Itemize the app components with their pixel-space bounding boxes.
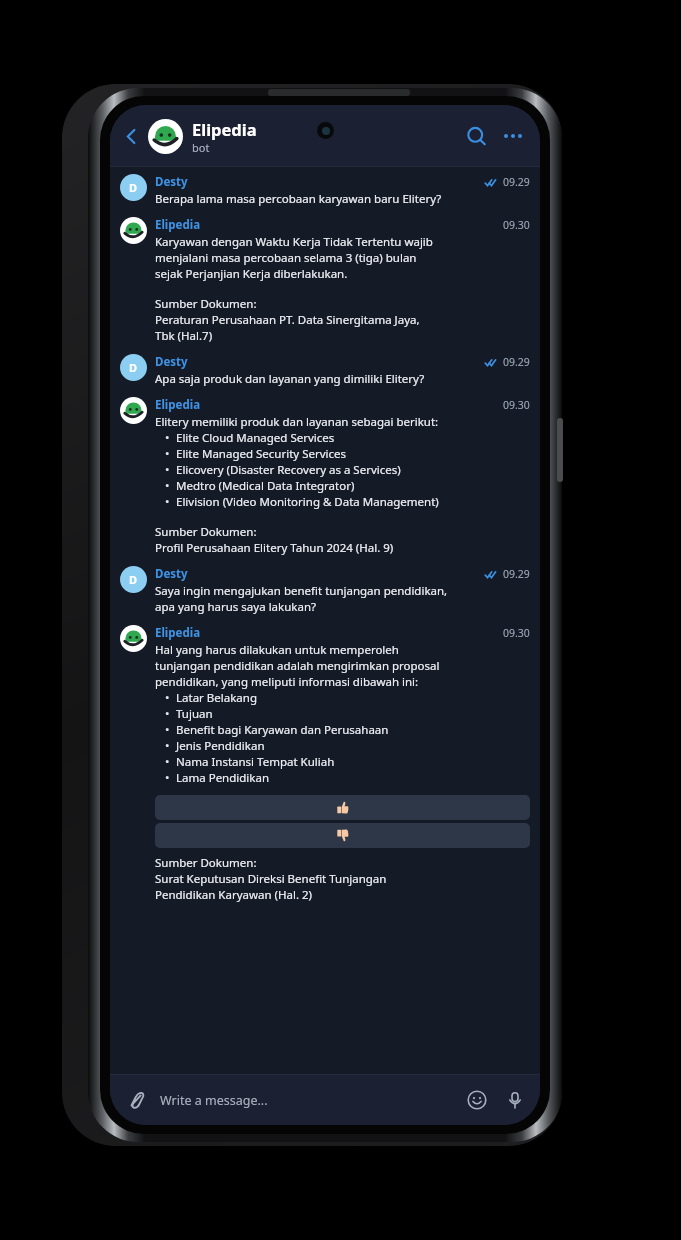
staticText: Peraturan Perusahaan PT. Data Sinergitam… — [155, 312, 420, 328]
staticText: Elite Managed Security Services — [176, 446, 347, 462]
staticText: • — [165, 722, 170, 738]
staticText: Surat Keputusan Direksi Benefit Tunjanga… — [155, 871, 387, 887]
button[interactable]: D — [110, 561, 540, 620]
button[interactable]: D — [110, 349, 540, 392]
staticText: Tujuan — [176, 706, 213, 722]
staticText: pendidikan, yang meliputi informasi diba… — [155, 674, 419, 690]
staticText: • — [165, 478, 170, 494]
staticText: Elipedia — [192, 118, 257, 140]
staticText: Berapa lama masa percobaan karyawan baru… — [155, 191, 442, 207]
staticText: Hal yang harus dilakukan untuk memperole… — [155, 642, 399, 658]
staticText: sejak Perjanjian Kerja diberlakukan. — [155, 266, 348, 282]
staticText: Apa saja produk dan layanan yang dimilik… — [155, 371, 425, 387]
button[interactable]: More options — [498, 121, 528, 151]
staticText: • — [165, 770, 170, 786]
staticText: • — [165, 430, 170, 446]
staticText: Write a message... — [160, 1092, 268, 1109]
staticText: tunjangan pendidikan adalah mengirimkan … — [155, 658, 440, 674]
staticText: • — [165, 738, 170, 754]
staticText: Pendidikan Karyawan (Hal. 2) — [155, 887, 313, 903]
staticText: 09.29 — [503, 355, 530, 369]
staticText: Jenis Pendidikan — [176, 738, 265, 754]
button[interactable]: Elipedia — [110, 392, 540, 561]
staticText: bot — [192, 140, 210, 155]
staticText: Nama Instansi Tempat Kuliah — [176, 754, 335, 770]
staticText: Desty — [155, 566, 188, 582]
staticText: 09.30 — [503, 626, 530, 640]
button[interactable]: Back — [116, 121, 146, 151]
button[interactable]: Elipedia — [110, 620, 540, 908]
staticText: Elipedia — [155, 397, 201, 413]
staticText: 09.29 — [503, 175, 530, 189]
button[interactable]: D — [110, 169, 540, 212]
staticText: 09.29 — [503, 567, 530, 581]
staticText: D — [129, 180, 138, 195]
button[interactable]: Elipedia — [148, 118, 460, 155]
staticText: D — [129, 572, 138, 587]
staticText: Elite Cloud Managed Services — [176, 430, 335, 446]
staticText: Benefit bagi Karyawan dan Perusahaan — [176, 722, 389, 738]
staticText: Elicovery (Disaster Recovery as a Servic… — [176, 462, 401, 478]
button[interactable]: Search — [460, 120, 492, 152]
staticText: Sumber Dokumen: — [155, 855, 257, 871]
staticText: Medtro (Medical Data Integrator) — [176, 478, 355, 494]
button[interactable]: Emoji — [462, 1085, 492, 1115]
staticText: • — [165, 446, 170, 462]
staticText: D — [129, 360, 138, 375]
button[interactable]: Elipedia — [110, 212, 540, 349]
staticText: Latar Belakang — [176, 690, 257, 706]
staticText: Sumber Dokumen: — [155, 296, 257, 312]
staticText: Elitery memiliki produk dan layanan seba… — [155, 414, 439, 430]
button[interactable]: Thumbs down — [155, 823, 530, 848]
button[interactable]: Write a message... — [160, 1092, 462, 1109]
staticText: 09.30 — [503, 218, 530, 232]
staticText: Elivision (Video Monitoring & Data Manag… — [176, 494, 439, 510]
staticText: Tbk (Hal.7) — [155, 328, 213, 344]
button[interactable]: Voice message — [500, 1085, 530, 1115]
staticText: Sumber Dokumen: — [155, 524, 257, 540]
staticText: • — [165, 462, 170, 478]
staticText: menjalani masa percobaan selama 3 (tiga)… — [155, 250, 417, 266]
staticText: Elipedia — [155, 217, 201, 233]
staticText: Desty — [155, 174, 188, 190]
staticText: apa yang harus saya lakukan? — [155, 599, 316, 615]
staticText: Saya ingin mengajukan benefit tunjangan … — [155, 583, 448, 599]
staticText: Karyawan dengan Waktu Kerja Tidak Terten… — [155, 234, 433, 250]
staticText: 09.30 — [503, 398, 530, 412]
staticText: • — [165, 754, 170, 770]
staticText: Elipedia — [155, 625, 201, 641]
button[interactable]: Attach file — [120, 1084, 152, 1116]
staticText: Lama Pendidikan — [176, 770, 269, 786]
staticText: • — [165, 494, 170, 510]
staticText: Desty — [155, 354, 188, 370]
staticText: • — [165, 690, 170, 706]
staticText: • — [165, 706, 170, 722]
button[interactable]: Thumbs up — [155, 795, 530, 820]
staticText: Profil Perusahaan Elitery Tahun 2024 (Ha… — [155, 540, 394, 556]
